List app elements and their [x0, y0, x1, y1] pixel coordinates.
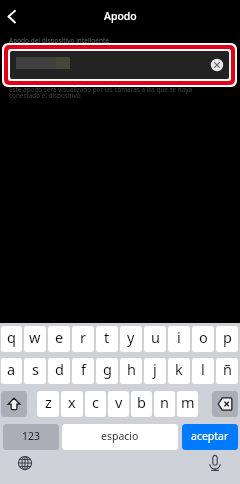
button[interactable]: Back	[0, 0, 28, 30]
button[interactable]: espacio	[62, 424, 178, 450]
staticText: z	[45, 392, 52, 412]
staticText: 123	[22, 429, 41, 443]
button[interactable]: v	[108, 391, 129, 417]
staticText: e	[55, 327, 64, 347]
staticText: Apodo	[104, 9, 137, 23]
button[interactable]: Shift	[1, 391, 27, 417]
staticText: w	[29, 327, 41, 347]
button[interactable]: x	[61, 391, 83, 417]
button[interactable]: Backspace	[212, 391, 238, 417]
staticText: Este apodo será visualizado por las cáma…	[9, 85, 193, 100]
button[interactable]: Change language	[17, 455, 33, 471]
staticText: m	[181, 392, 195, 412]
staticText: a	[7, 359, 16, 379]
staticText: l	[201, 359, 205, 379]
staticText: Apodo del dispositivo inteligente	[9, 36, 109, 45]
button[interactable]: o	[192, 326, 214, 352]
button[interactable]: b	[131, 391, 152, 417]
button[interactable]: k	[168, 358, 190, 384]
button[interactable]: y	[120, 326, 142, 352]
staticText: c	[92, 392, 99, 412]
staticText: h	[127, 359, 136, 379]
staticText: espacio	[101, 429, 139, 443]
staticText: q	[7, 327, 16, 347]
button[interactable]: f	[72, 358, 94, 384]
staticText: ñ	[223, 359, 232, 379]
button[interactable]: z	[37, 391, 59, 417]
button[interactable]: t	[96, 326, 118, 352]
staticText: u	[151, 327, 160, 347]
staticText: y	[127, 327, 135, 347]
button[interactable]: Clear text	[10, 51, 229, 79]
staticText: d	[55, 359, 64, 379]
button[interactable]: g	[96, 358, 118, 384]
button[interactable]: h	[120, 358, 142, 384]
button[interactable]: s	[24, 358, 46, 384]
staticText: f	[81, 359, 86, 379]
button[interactable]: n	[154, 391, 175, 417]
staticText: i	[177, 327, 181, 347]
staticText: k	[175, 359, 183, 379]
button[interactable]: m	[177, 391, 198, 417]
staticText: p	[223, 327, 232, 347]
staticText: j	[153, 359, 157, 379]
staticText: r	[80, 327, 86, 347]
staticText: v	[115, 392, 123, 412]
button[interactable]: d	[48, 358, 70, 384]
staticText: b	[137, 392, 146, 412]
button[interactable]: p	[216, 326, 238, 352]
button[interactable]: q	[1, 326, 22, 352]
staticText: o	[199, 327, 208, 347]
button[interactable]: a	[1, 358, 22, 384]
staticText: s	[32, 359, 39, 379]
button[interactable]: w	[24, 326, 46, 352]
button[interactable]: l	[192, 358, 214, 384]
button[interactable]: u	[144, 326, 166, 352]
button[interactable]: c	[85, 391, 106, 417]
button[interactable]: Voice input	[207, 455, 223, 471]
button[interactable]: j	[144, 358, 166, 384]
button[interactable]: 123	[3, 424, 59, 450]
staticText: t	[104, 327, 110, 347]
staticText: n	[160, 392, 169, 412]
button[interactable]: e	[48, 326, 70, 352]
staticText: x	[68, 392, 76, 412]
button[interactable]: ñ	[216, 358, 238, 384]
button[interactable]: i	[168, 326, 190, 352]
button[interactable]: Clear text	[210, 58, 224, 72]
staticText: g	[103, 359, 112, 379]
staticText: aceptar	[191, 429, 229, 443]
button[interactable]: aceptar	[182, 424, 238, 450]
button[interactable]: r	[72, 326, 94, 352]
